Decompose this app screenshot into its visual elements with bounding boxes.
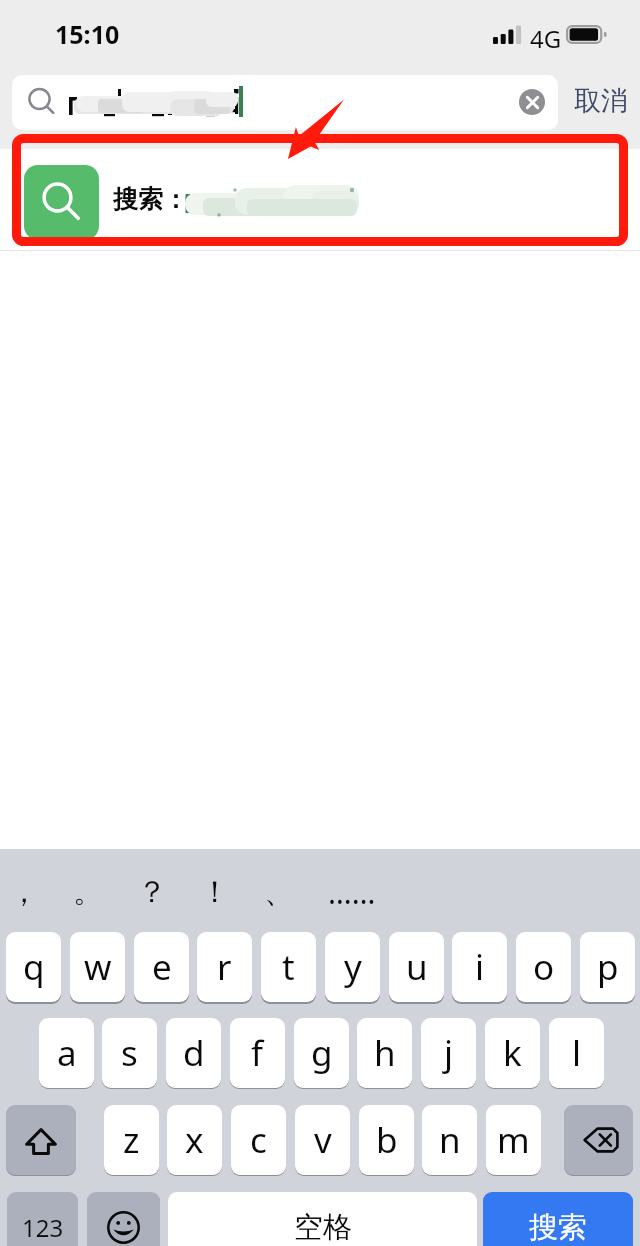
button[interactable]: j <box>421 1018 476 1088</box>
button[interactable]: q <box>6 932 61 1002</box>
staticText: l <box>572 1029 582 1077</box>
staticText: p <box>597 943 619 991</box>
button[interactable]: ？ <box>134 855 189 925</box>
button[interactable]: x <box>167 1105 222 1175</box>
staticText: q <box>23 943 45 991</box>
button[interactable]: h <box>357 1018 412 1088</box>
button[interactable]: u <box>389 932 444 1002</box>
button[interactable]: d <box>166 1018 221 1088</box>
button[interactable]: y <box>325 932 380 1002</box>
staticText: b <box>376 1116 398 1164</box>
staticText: k <box>503 1029 522 1077</box>
button[interactable]: e <box>134 932 189 1002</box>
button[interactable]: Clear text <box>12 75 558 130</box>
button[interactable]: l <box>549 1018 604 1088</box>
staticText: g <box>311 1029 333 1077</box>
staticText: u <box>406 943 428 991</box>
staticText: 15:10 <box>55 17 120 51</box>
staticText: j <box>444 1029 454 1077</box>
button[interactable]: g <box>294 1018 349 1088</box>
staticText: n <box>439 1116 461 1164</box>
staticText: ！ <box>200 873 230 911</box>
button[interactable]: v <box>295 1105 350 1175</box>
staticText: i <box>475 943 485 991</box>
staticText: z <box>123 1116 140 1164</box>
button[interactable]: Shift <box>6 1105 76 1175</box>
button[interactable]: n <box>422 1105 477 1175</box>
staticText: ， <box>9 873 39 911</box>
staticText: ？ <box>137 873 167 911</box>
button[interactable]: Backspace <box>564 1105 633 1175</box>
staticText: m <box>497 1116 530 1164</box>
staticText: 取消 <box>574 84 628 118</box>
button[interactable]: p <box>580 932 635 1002</box>
button[interactable]: b <box>359 1105 414 1175</box>
staticText: 空格 <box>294 1209 352 1246</box>
staticText: 4G <box>530 22 562 55</box>
staticText: 、 <box>264 873 294 911</box>
button[interactable]: f <box>230 1018 285 1088</box>
button[interactable]: 、 <box>261 855 316 925</box>
button[interactable]: 。 <box>70 855 125 925</box>
staticText: o <box>533 943 555 991</box>
staticText: s <box>121 1029 138 1077</box>
button[interactable]: c <box>231 1105 286 1175</box>
button[interactable]: s <box>102 1018 157 1088</box>
button[interactable]: 取消 <box>572 82 630 120</box>
button[interactable]: …… <box>325 855 380 925</box>
button[interactable]: ！ <box>197 855 252 925</box>
button[interactable]: 空格 <box>168 1192 477 1246</box>
button[interactable]: Clear text <box>519 89 545 115</box>
staticText: a <box>57 1029 77 1077</box>
staticText: v <box>314 1116 332 1164</box>
button[interactable]: i <box>452 932 507 1002</box>
staticText: 搜索 <box>529 1209 587 1246</box>
staticText: …… <box>328 872 376 913</box>
button[interactable]: 123 <box>7 1192 78 1246</box>
button[interactable]: o <box>516 932 571 1002</box>
button[interactable]: 搜索： <box>0 149 640 251</box>
button[interactable]: ， <box>6 855 61 925</box>
staticText: 搜索： <box>113 184 188 215</box>
button[interactable]: k <box>485 1018 540 1088</box>
button[interactable]: z <box>104 1105 159 1175</box>
staticText: h <box>374 1029 396 1077</box>
staticText: 。 <box>73 873 103 911</box>
button[interactable]: m <box>486 1105 541 1175</box>
button[interactable]: 搜索 <box>483 1192 633 1246</box>
staticText: e <box>152 943 172 991</box>
staticText: 123 <box>22 1211 64 1244</box>
staticText: r <box>217 943 232 991</box>
staticText: t <box>282 943 295 991</box>
staticText: c <box>250 1116 267 1164</box>
staticText: f <box>251 1029 264 1077</box>
button[interactable]: Emoji keyboard <box>87 1192 160 1246</box>
button[interactable]: w <box>70 932 125 1002</box>
button[interactable]: a <box>39 1018 94 1088</box>
staticText: d <box>183 1029 205 1077</box>
staticText: w <box>84 943 112 991</box>
staticText: y <box>344 943 362 991</box>
button[interactable]: r <box>197 932 252 1002</box>
staticText: x <box>185 1116 204 1164</box>
button[interactable]: t <box>261 932 316 1002</box>
